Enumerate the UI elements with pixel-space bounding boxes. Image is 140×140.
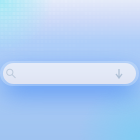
button[interactable]: Search bbox=[3, 63, 136, 84]
